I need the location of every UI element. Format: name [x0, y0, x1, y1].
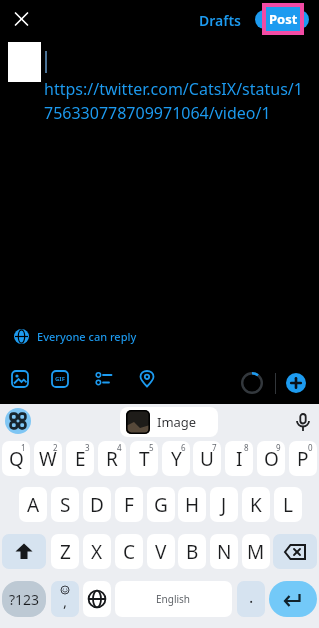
button[interactable]: S: [51, 487, 79, 522]
button[interactable]: G: [147, 487, 175, 522]
staticText: D: [90, 492, 104, 518]
button[interactable]: E: [66, 441, 94, 476]
button[interactable]: Z: [51, 534, 79, 569]
button[interactable]: [11, 370, 29, 388]
staticText: English: [156, 592, 191, 606]
staticText: .: [249, 586, 254, 608]
button[interactable]: L: [274, 487, 302, 522]
staticText: C: [123, 539, 136, 565]
button[interactable]: [296, 413, 310, 432]
staticText: 6: [181, 442, 186, 453]
staticText: GIF: [55, 375, 65, 383]
button[interactable]: ,: [51, 581, 79, 617]
staticText: Z: [60, 539, 71, 565]
staticText: N: [217, 539, 232, 565]
staticText: 1: [21, 442, 26, 453]
button[interactable]: Image: [120, 407, 218, 437]
button[interactable]: C: [115, 534, 143, 569]
staticText: 756330778709971064/video/1: [44, 102, 271, 124]
button[interactable]: [5, 408, 31, 434]
button[interactable]: V: [147, 534, 175, 569]
button[interactable]: [8, 6, 36, 34]
button[interactable]: W: [34, 441, 62, 476]
button[interactable]: [255, 10, 309, 29]
button[interactable]: [95, 370, 113, 388]
staticText: 2: [53, 442, 58, 453]
staticText: S: [60, 492, 71, 518]
staticText: Q: [9, 446, 24, 472]
staticText: K: [250, 492, 262, 518]
button[interactable]: [269, 581, 317, 617]
button[interactable]: A: [19, 487, 47, 522]
staticText: T: [139, 446, 150, 472]
button[interactable]: English: [115, 581, 232, 617]
button[interactable]: Q: [2, 441, 30, 476]
button[interactable]: R: [98, 441, 126, 476]
staticText: ,: [63, 591, 68, 611]
button[interactable]: [273, 534, 317, 569]
staticText: 8: [244, 442, 249, 453]
button[interactable]: K: [242, 487, 270, 522]
staticText: G: [154, 492, 168, 518]
staticText: ?123: [9, 590, 40, 609]
button[interactable]: I: [225, 441, 253, 476]
button[interactable]: O: [257, 441, 285, 476]
staticText: Drafts: [199, 11, 242, 30]
button[interactable]: F: [115, 487, 143, 522]
button[interactable]: H: [178, 487, 206, 522]
staticText: Everyone can reply: [37, 329, 137, 344]
button[interactable]: P: [289, 441, 317, 476]
staticText: W: [39, 446, 57, 472]
staticText: B: [186, 539, 199, 565]
button[interactable]: U: [193, 441, 221, 476]
button[interactable]: N: [210, 534, 238, 569]
button[interactable]: GIF: [51, 370, 69, 388]
button[interactable]: D: [83, 487, 111, 522]
button[interactable]: Everyone can reply: [14, 329, 137, 344]
staticText: R: [106, 446, 118, 472]
staticText: https://twitter.com/CatsIX/status/1: [44, 78, 303, 100]
staticText: 9: [276, 442, 281, 453]
button[interactable]: B: [178, 534, 206, 569]
staticText: P: [297, 446, 309, 472]
button[interactable]: J: [210, 487, 238, 522]
staticText: 0: [308, 442, 313, 453]
staticText: 4: [117, 442, 122, 453]
staticText: X: [91, 539, 103, 565]
button[interactable]: [138, 370, 156, 388]
staticText: I: [236, 446, 243, 472]
staticText: F: [124, 492, 134, 518]
staticText: J: [221, 492, 227, 518]
staticText: 3: [85, 442, 90, 453]
button[interactable]: [286, 373, 306, 393]
button[interactable]: [2, 534, 46, 569]
staticText: O: [264, 446, 279, 472]
staticText: Image: [157, 413, 197, 431]
button[interactable]: M: [242, 534, 270, 569]
button[interactable]: ?123: [2, 581, 46, 617]
staticText: Post: [269, 10, 298, 28]
button[interactable]: [83, 581, 111, 617]
staticText: 5: [149, 442, 154, 453]
staticText: H: [185, 492, 200, 518]
staticText: V: [155, 539, 167, 565]
staticText: M: [247, 539, 265, 565]
staticText: Y: [171, 446, 182, 472]
staticText: U: [200, 446, 214, 472]
button[interactable]: .: [237, 581, 265, 617]
staticText: 7: [212, 442, 217, 453]
button[interactable]: X: [83, 534, 111, 569]
button[interactable]: T: [130, 441, 158, 476]
staticText: L: [283, 492, 293, 518]
staticText: E: [75, 446, 86, 472]
button[interactable]: Drafts: [199, 8, 242, 32]
staticText: A: [27, 492, 40, 518]
button[interactable]: Y: [162, 441, 190, 476]
